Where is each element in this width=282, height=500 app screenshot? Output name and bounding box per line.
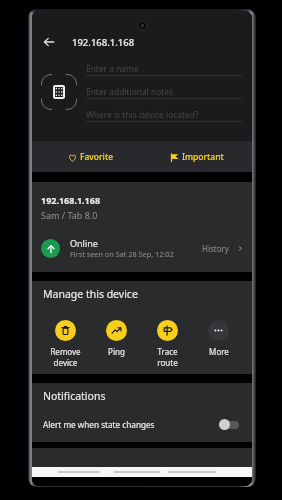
staticText: Where is this device located? (86, 109, 199, 120)
staticText: Alert me when state changes (43, 419, 155, 430)
staticText: 192.168.1.168 (72, 36, 135, 49)
other: History (237, 245, 244, 252)
staticText: Favorite (80, 151, 114, 163)
staticText: History (202, 243, 229, 254)
button[interactable]: Remove device (40, 320, 91, 368)
button[interactable]: Important (150, 141, 244, 172)
staticText: Online (70, 237, 98, 249)
staticText: Manage this device (43, 287, 138, 301)
staticText: Enter a name (86, 63, 139, 74)
button[interactable]: Back (38, 31, 60, 53)
button[interactable]: Enter a name (86, 53, 242, 76)
staticText: Important (182, 151, 224, 163)
button[interactable]: More (193, 320, 244, 357)
staticText: Trace route (157, 346, 178, 368)
button[interactable]: Ping (91, 320, 142, 357)
button[interactable]: Alert me when state changes (32, 412, 252, 436)
other: Alert toggle (219, 419, 239, 430)
button[interactable]: Enter additional notes (86, 76, 242, 99)
staticText: First seen on Sat 28 Sep, 12:02 (70, 249, 174, 259)
staticText: Ping (108, 346, 125, 357)
staticText: Enter additional notes (86, 86, 174, 97)
button[interactable]: Where is this device located? (86, 99, 242, 122)
staticText: Remove device (50, 346, 81, 368)
staticText: More (209, 346, 229, 357)
staticText: 192.168.1.168 (41, 194, 101, 206)
button[interactable]: Trace route (142, 320, 193, 368)
button[interactable]: Online (32, 235, 252, 261)
button[interactable]: Favorite (32, 141, 150, 172)
staticText: Notifications (43, 389, 106, 403)
staticText: Sam / Tab 8.0 (41, 209, 98, 221)
